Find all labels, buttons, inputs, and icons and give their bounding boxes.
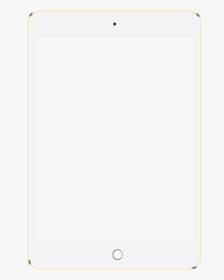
button[interactable]: Home button <box>110 247 126 263</box>
